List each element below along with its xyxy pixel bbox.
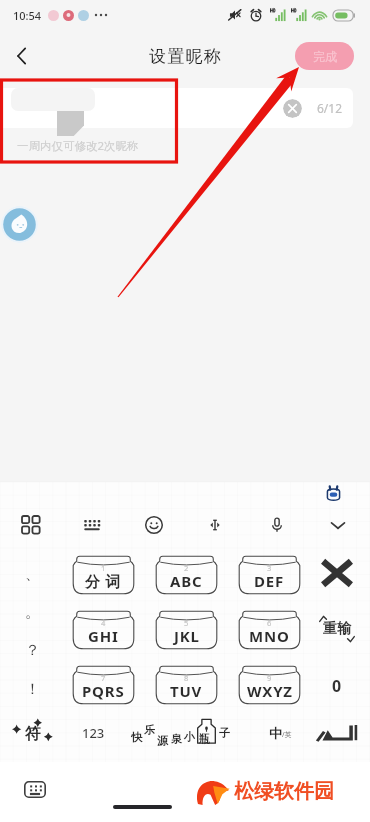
button[interactable]: 8 (155, 665, 218, 705)
staticText: 乐 (144, 723, 155, 737)
button[interactable]: 7 (72, 665, 135, 705)
button[interactable]: 2 (155, 555, 218, 595)
button[interactable]: ！ (12, 678, 52, 700)
staticText: MNO (249, 626, 290, 646)
button[interactable]: 4 (72, 610, 135, 650)
staticText: 3 (267, 563, 272, 573)
staticText: 、 (25, 565, 40, 584)
staticText: TUV (170, 681, 203, 701)
button[interactable]: 123 (72, 716, 114, 750)
button[interactable]: 0 (315, 666, 359, 706)
staticText: 1 (101, 563, 106, 573)
staticText: 分 词 (85, 571, 122, 591)
button[interactable]: Emoji (132, 503, 176, 547)
button[interactable]: Hide keyboard (316, 503, 360, 547)
staticText: 一周内仅可修改2次昵称 (17, 138, 139, 154)
button[interactable]: Assistant (1, 206, 38, 243)
button[interactable]: Back (5, 39, 39, 73)
staticText: 6 (267, 618, 272, 628)
button[interactable]: 5 (155, 610, 218, 650)
staticText: 设置昵称 (149, 46, 222, 67)
staticText: 源 (157, 734, 168, 748)
staticText: 4 (101, 618, 106, 628)
button[interactable]: Clear text (283, 99, 302, 118)
staticText: 瓶 (199, 732, 210, 746)
staticText: ！ (25, 680, 40, 699)
staticText: 松绿软件园 (234, 779, 334, 804)
button[interactable]: Voice input (255, 503, 299, 547)
staticText: 0 (332, 675, 342, 697)
staticText: PQRS (82, 681, 125, 701)
button[interactable]: 3 (238, 555, 301, 595)
button[interactable]: Text cursor (193, 503, 237, 547)
button[interactable]: Apps (9, 503, 53, 547)
staticText: 2 (184, 563, 189, 573)
staticText: WXYZ (247, 681, 293, 701)
button[interactable]: Switch input method (22, 779, 48, 799)
staticText: ？ (25, 641, 40, 660)
button[interactable]: Clear text (0, 88, 353, 128)
staticText: 重输 (323, 620, 351, 638)
button[interactable]: 完成 (295, 42, 354, 70)
button[interactable]: 6 (238, 610, 301, 650)
staticText: 完成 (313, 49, 337, 64)
staticText: ABC (170, 571, 203, 591)
staticText: 9 (267, 673, 272, 683)
staticText: 子 (219, 726, 230, 740)
staticText: 。 (25, 603, 40, 622)
staticText: 中 (269, 725, 282, 741)
button[interactable]: Space (126, 710, 246, 754)
button[interactable]: ？ (12, 639, 52, 661)
staticText: 10:54 (13, 8, 42, 23)
staticText: 泉 (171, 732, 182, 746)
button[interactable]: 。 (12, 601, 52, 623)
button[interactable]: Enter (310, 714, 364, 752)
button[interactable]: 重输 (313, 608, 361, 650)
staticText: DEF (254, 571, 285, 591)
staticText: 8 (184, 673, 189, 683)
staticText: 123 (82, 724, 105, 742)
staticText: 6/12 (317, 100, 343, 116)
button[interactable]: 9 (238, 665, 301, 705)
staticText: 快 (131, 730, 142, 744)
button[interactable]: 、 (12, 563, 52, 585)
staticText: 5 (184, 618, 189, 628)
staticText: GHI (88, 626, 119, 646)
staticText: 小 (184, 730, 195, 744)
button[interactable]: Symbols (8, 714, 56, 752)
staticText: JKL (174, 626, 200, 646)
button[interactable]: 中 (258, 716, 302, 750)
staticText: 符 (25, 724, 41, 744)
button[interactable]: Keyboard layout (70, 503, 114, 547)
staticText: /英 (282, 730, 292, 740)
button[interactable]: 1 (72, 555, 135, 595)
button[interactable]: Delete (315, 553, 359, 593)
staticText: 7 (101, 673, 106, 683)
